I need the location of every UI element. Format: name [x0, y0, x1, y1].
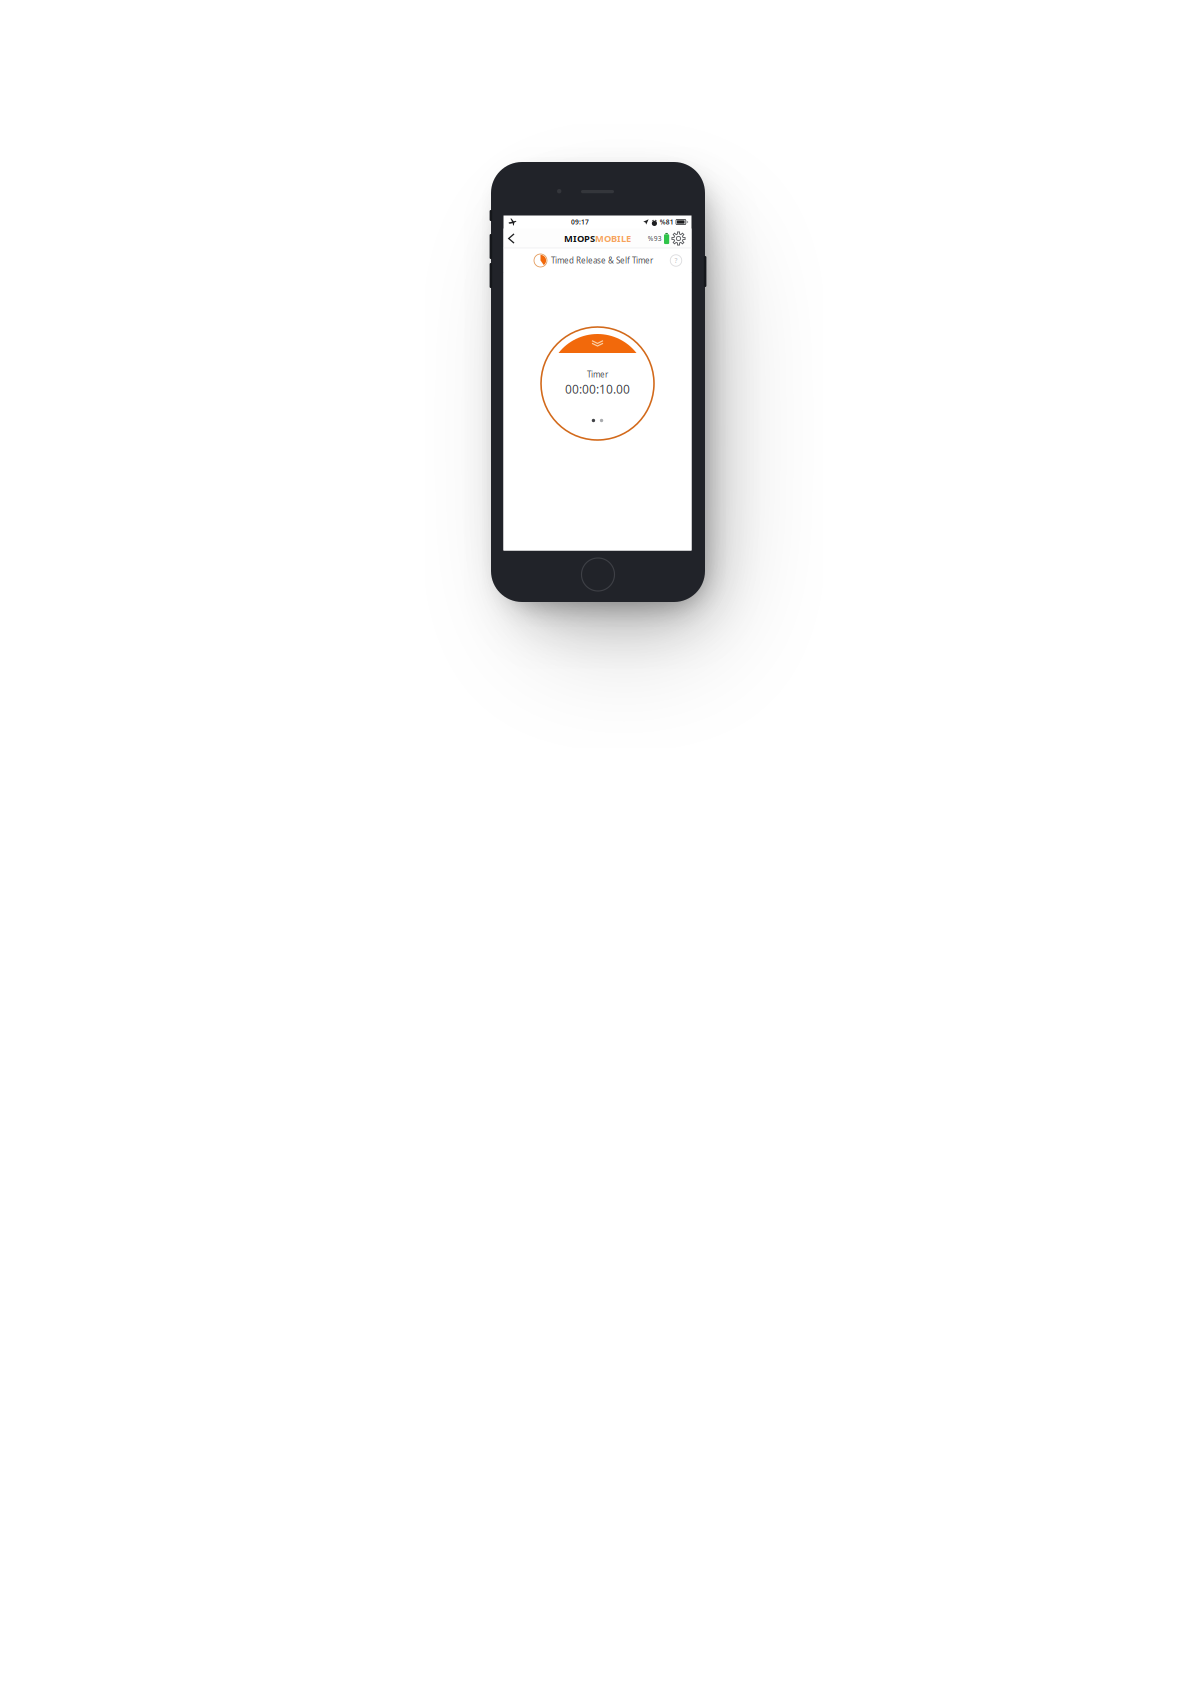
staticText: MIOPS [564, 232, 595, 245]
staticText: %93 [648, 234, 662, 243]
staticText: MOBILE [595, 232, 631, 245]
button[interactable]: Settings [671, 231, 685, 245]
staticText: 09:17 [571, 218, 589, 226]
button[interactable]: Timer [541, 327, 654, 440]
staticText: 00:00:10.00 [565, 381, 630, 397]
button[interactable]: Timed Release & Self Timer [530, 250, 657, 271]
staticText: Timer [587, 369, 608, 380]
staticText: %81 [660, 218, 674, 226]
button[interactable]: Help [669, 254, 682, 267]
staticText: Timed Release & Self Timer [551, 255, 653, 266]
button[interactable]: Back [508, 228, 526, 248]
staticText: ? [674, 256, 677, 265]
